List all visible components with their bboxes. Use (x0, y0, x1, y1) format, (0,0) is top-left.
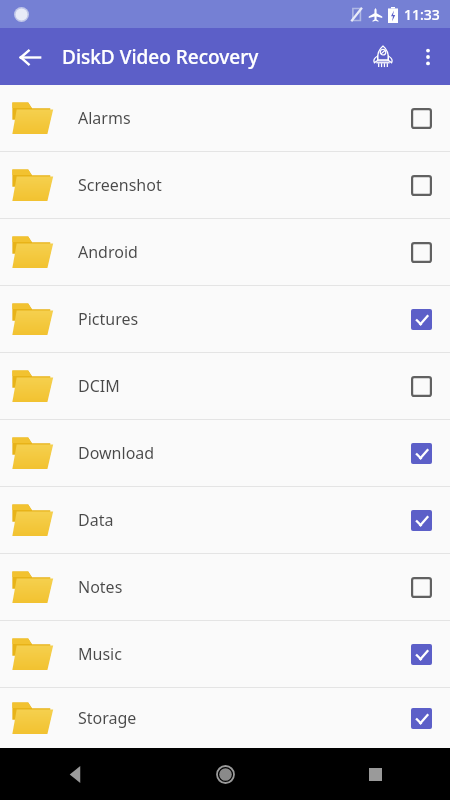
button[interactable]: Notes (0, 554, 450, 620)
button[interactable]: Home (150, 748, 300, 800)
staticText: Alarms (78, 107, 398, 129)
button[interactable]: Not selected (398, 162, 444, 208)
button[interactable]: DCIM (0, 353, 450, 419)
staticText: Screenshot (78, 174, 398, 196)
staticText: 11:33 (404, 5, 440, 24)
button[interactable]: Data (0, 487, 450, 553)
staticText: Android (78, 241, 398, 263)
button[interactable]: Boost (360, 34, 406, 80)
button[interactable]: Not selected (398, 95, 444, 141)
button[interactable]: Back (0, 748, 150, 800)
staticText: Data (78, 509, 398, 531)
button[interactable]: Selected (398, 631, 444, 677)
button[interactable]: Not selected (398, 363, 444, 409)
button[interactable]: Not selected (398, 229, 444, 275)
button[interactable]: Alarms (0, 85, 450, 151)
staticText: Storage (78, 707, 398, 729)
button[interactable]: Recent apps (300, 748, 450, 800)
button[interactable]: Selected (398, 695, 444, 741)
staticText: DiskD Video Recovery (62, 44, 259, 70)
button[interactable]: Back (6, 33, 54, 81)
button[interactable]: Pictures (0, 286, 450, 352)
button[interactable]: Selected (398, 497, 444, 543)
button[interactable]: Music (0, 621, 450, 687)
staticText: Notes (78, 576, 398, 598)
button[interactable]: Selected (398, 296, 444, 342)
button[interactable]: Android (0, 219, 450, 285)
button[interactable]: Not selected (398, 564, 444, 610)
button[interactable]: Storage (0, 688, 450, 748)
button[interactable]: Download (0, 420, 450, 486)
button[interactable]: Selected (398, 430, 444, 476)
staticText: Music (78, 643, 398, 665)
staticText: Pictures (78, 308, 398, 330)
staticText: DCIM (78, 375, 398, 397)
button[interactable]: More options (406, 35, 450, 79)
button[interactable]: Screenshot (0, 152, 450, 218)
staticText: Download (78, 442, 398, 464)
